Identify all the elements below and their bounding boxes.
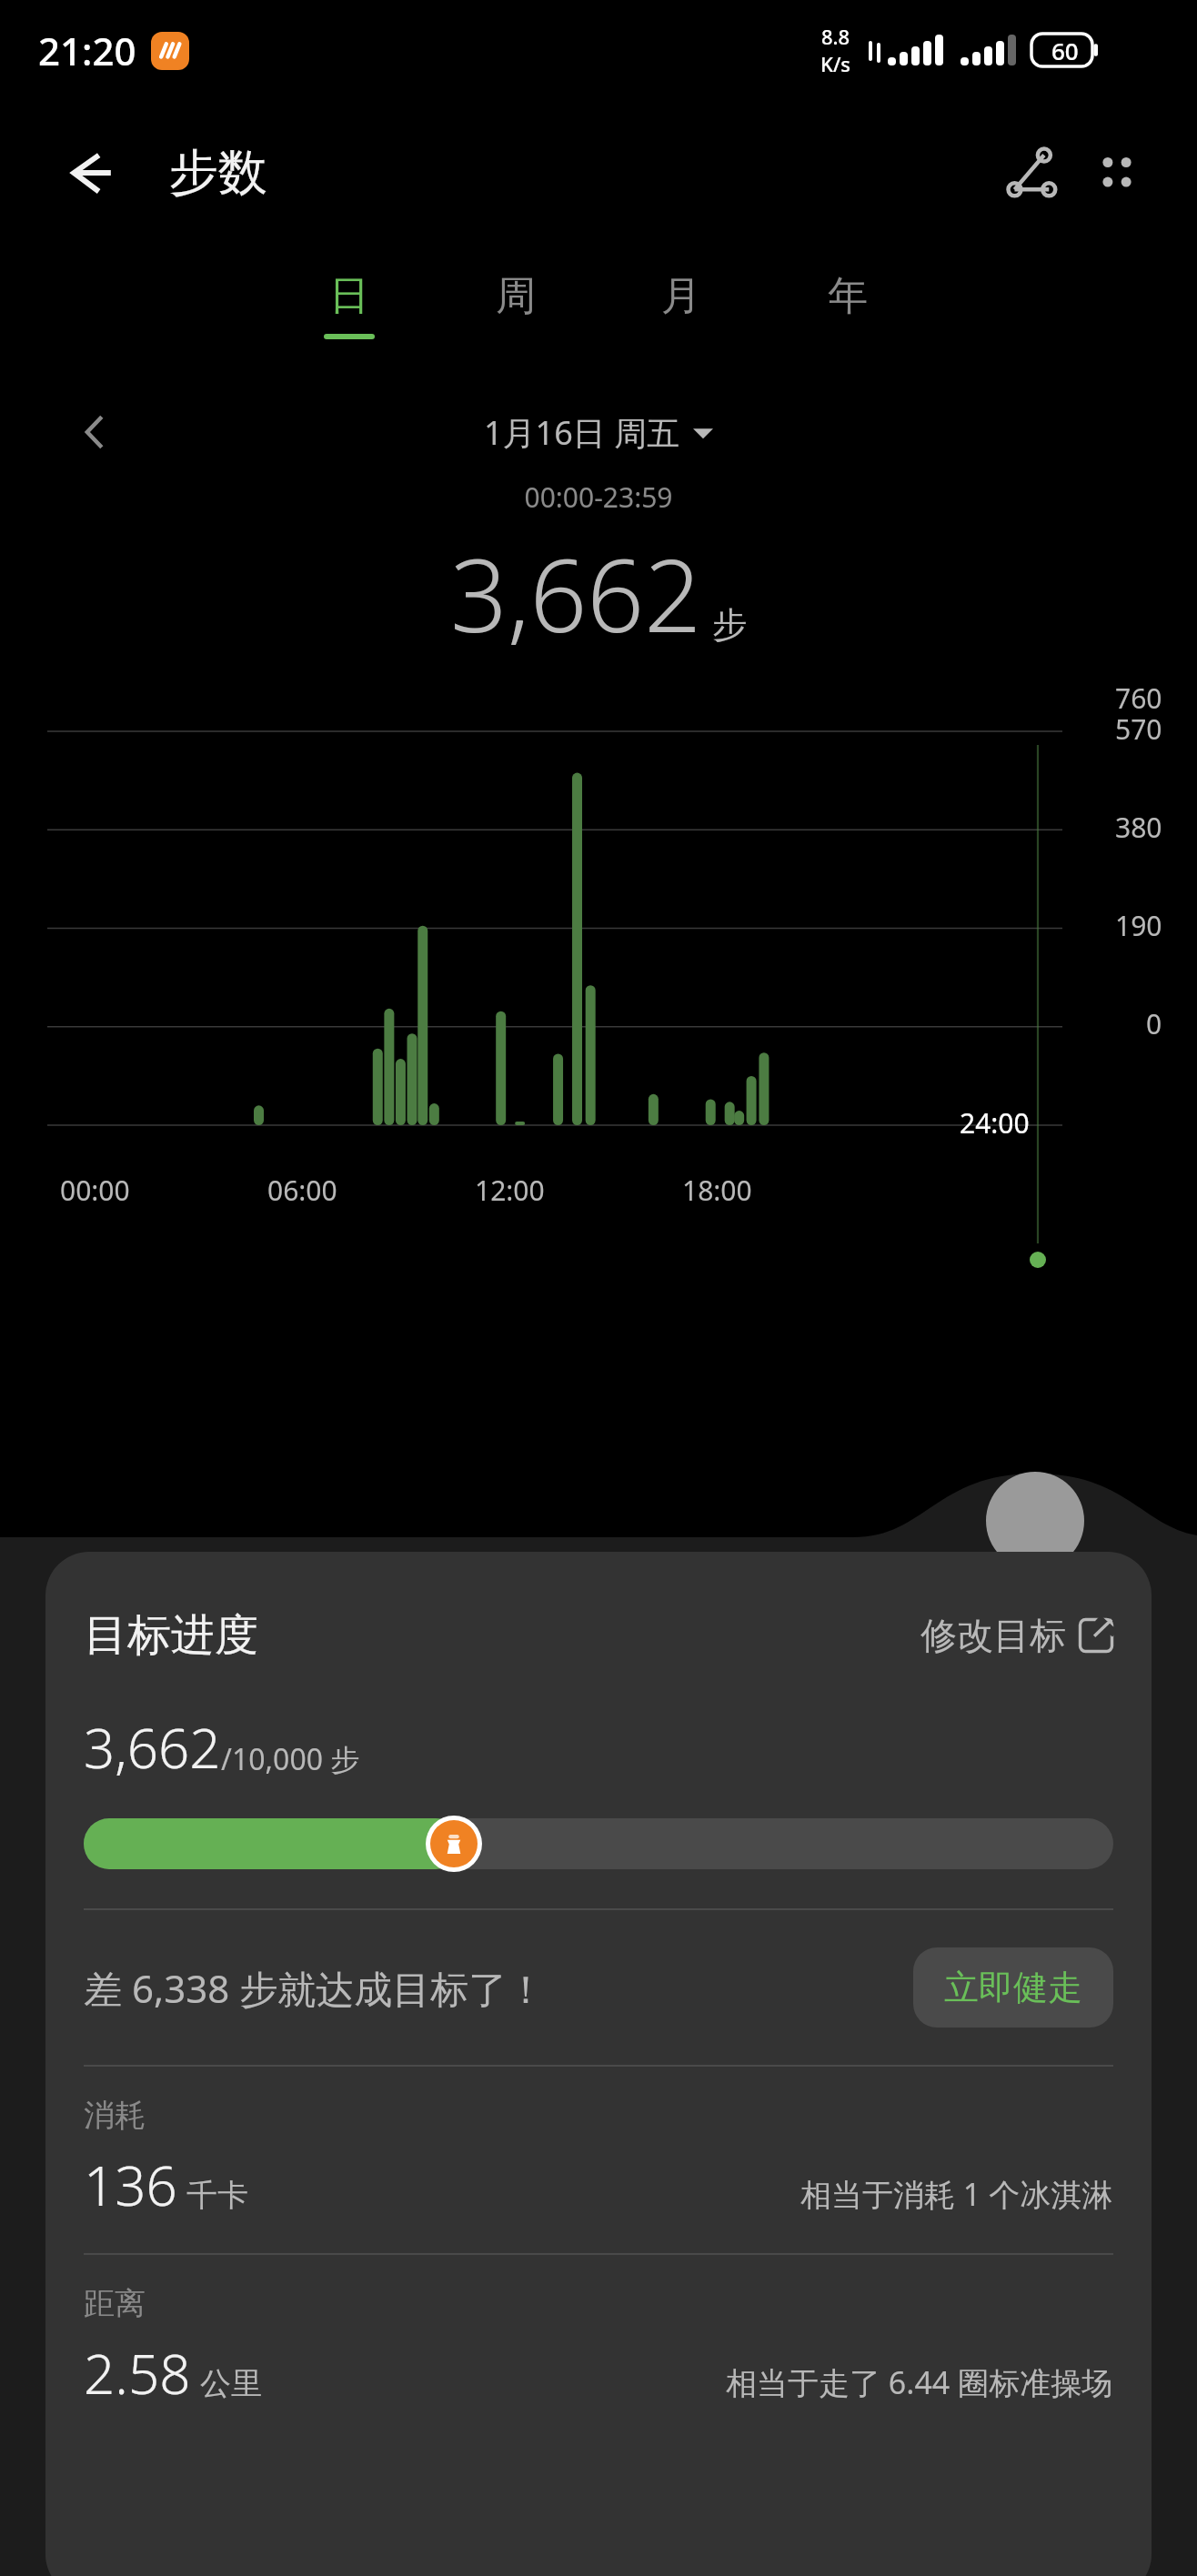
button[interactable]: More options: [1075, 131, 1159, 215]
staticText: 380: [1115, 809, 1162, 846]
staticText: 千卡: [186, 2176, 248, 2215]
staticText: 190: [1115, 907, 1162, 944]
staticText: 24:00: [960, 1104, 1030, 1142]
staticText: 月: [661, 271, 701, 321]
staticText: 距离: [84, 2284, 146, 2323]
staticText: 570: [1115, 710, 1162, 748]
staticText: 12:00: [475, 1172, 545, 1209]
staticText: 06:00: [267, 1172, 337, 1209]
staticText: 步数: [169, 142, 267, 204]
button[interactable]: 1月16日 周五: [484, 410, 713, 455]
staticText: 2.58: [84, 2336, 191, 2410]
staticText: 136: [84, 2148, 177, 2222]
staticText: 1月16日 周五: [484, 410, 680, 455]
button[interactable]: 日: [300, 246, 398, 364]
staticText: 年: [828, 271, 868, 321]
staticText: 0: [1146, 1005, 1162, 1042]
staticText: 相当于消耗 1 个冰淇淋: [800, 2173, 1113, 2215]
staticText: 周: [496, 271, 536, 321]
staticText: K/s: [820, 50, 851, 77]
button[interactable]: Share: [991, 131, 1075, 215]
staticText: 差 6,338 步就达成目标了！: [84, 1962, 546, 2014]
staticText: 步: [712, 603, 747, 647]
button[interactable]: 月: [632, 246, 730, 364]
staticText: 相当于走了 6.44 圈标准操场: [726, 2361, 1113, 2403]
staticText: 公里: [200, 2364, 262, 2403]
staticText: 760: [1115, 679, 1162, 710]
staticText: 立即健走: [944, 1966, 1082, 2009]
staticText: 修改目标: [920, 1613, 1066, 1658]
staticText: 21:20: [38, 25, 136, 76]
button[interactable]: 修改目标: [920, 1613, 1113, 1658]
button[interactable]: Previous day: [64, 400, 127, 464]
button[interactable]: 立即健走: [913, 1947, 1113, 2028]
button[interactable]: Scroll to top: [986, 1472, 1084, 1570]
staticText: 目标进度: [84, 1608, 258, 1663]
button[interactable]: Back: [55, 136, 127, 209]
staticText: 日: [329, 271, 369, 321]
button[interactable]: 周: [467, 246, 565, 364]
staticText: /10,000 步: [221, 1739, 360, 1779]
staticText: 00:00: [60, 1172, 130, 1209]
button[interactable]: 年: [799, 246, 897, 364]
staticText: 18:00: [682, 1172, 752, 1209]
staticText: 3,662: [84, 1710, 221, 1785]
staticText: 消耗: [84, 2096, 146, 2135]
staticText: 00:00-23:59: [0, 478, 1197, 516]
staticText: 60: [1051, 35, 1079, 66]
staticText: 3,662: [450, 525, 701, 661]
staticText: 8.8: [821, 23, 850, 50]
